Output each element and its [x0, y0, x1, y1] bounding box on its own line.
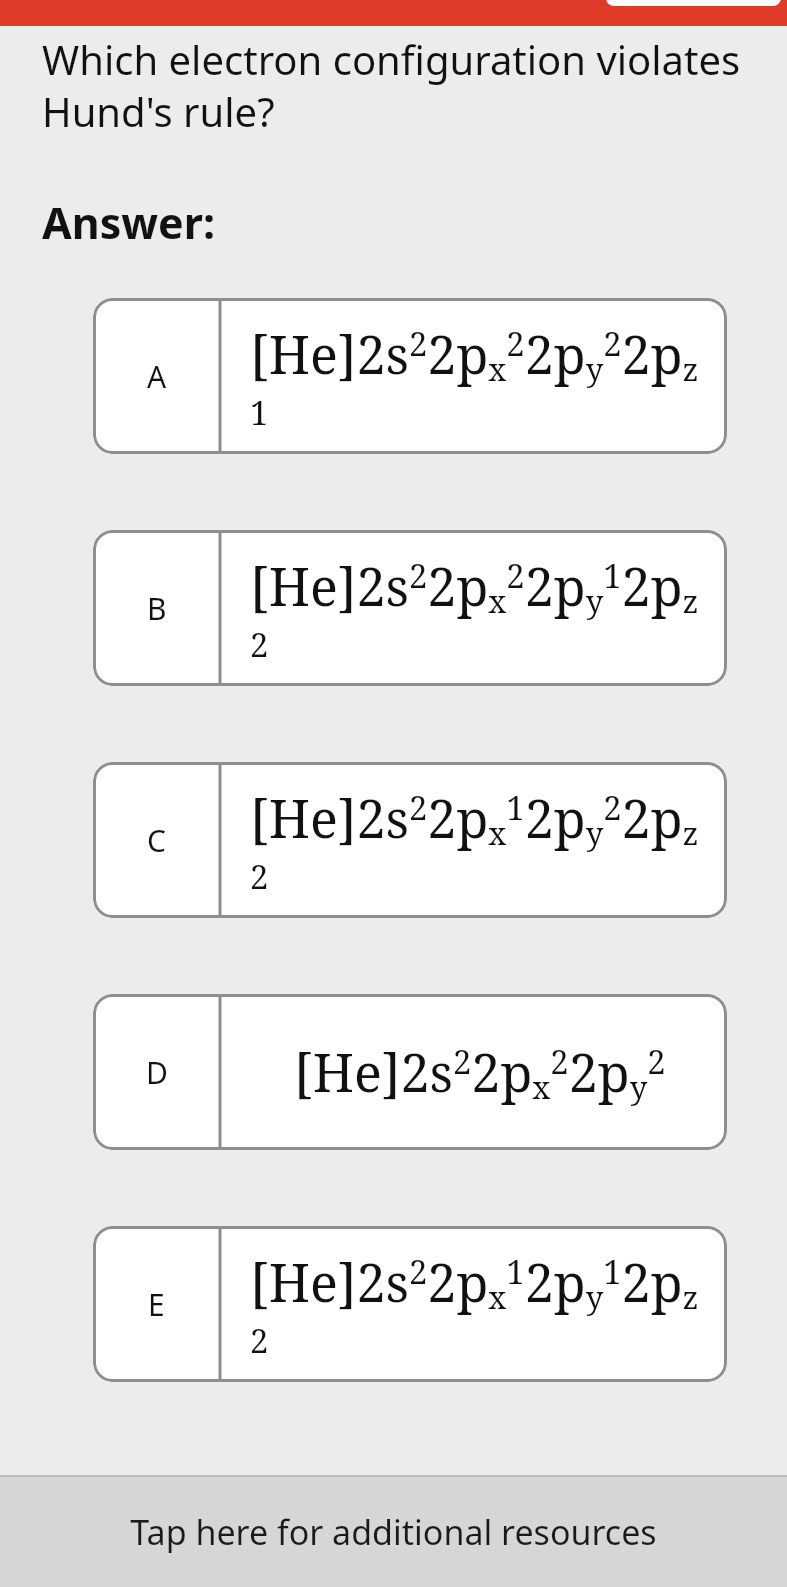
- button[interactable]: D: [93, 994, 727, 1150]
- staticText: [He]2s22px12py12pz2: [250, 1246, 709, 1363]
- staticText: Answer:: [42, 193, 216, 252]
- staticText: A: [147, 356, 167, 397]
- staticText: B: [147, 588, 167, 629]
- staticText: [He]2s22px22py22pz1: [250, 318, 709, 435]
- staticText: E: [148, 1284, 165, 1325]
- staticText: [He]2s22px22py2: [294, 1036, 666, 1108]
- staticText: C: [147, 820, 166, 861]
- button[interactable]: C: [93, 762, 727, 918]
- staticText: Which electron configuration violates Hu…: [42, 32, 753, 139]
- button[interactable]: Tap here for additional resources: [0, 1477, 787, 1587]
- staticText: [He]2s22px22py12pz2: [250, 550, 709, 667]
- staticText: D: [146, 1052, 168, 1093]
- staticText: Tap here for additional resources: [130, 1509, 657, 1555]
- button[interactable]: A: [93, 298, 727, 454]
- staticText: [He]2s22px12py22pz2: [250, 782, 709, 899]
- button[interactable]: E: [93, 1226, 727, 1382]
- button[interactable]: B: [93, 530, 727, 686]
